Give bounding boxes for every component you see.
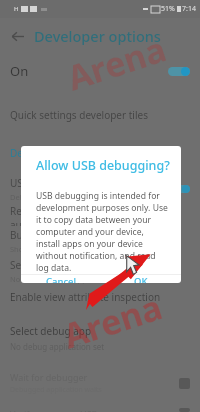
button[interactable]: Wait for debugger	[0, 370, 200, 396]
staticText: USB debugging	[10, 176, 84, 190]
button[interactable]: On	[0, 54, 200, 88]
staticText: OK	[134, 275, 148, 283]
staticText: Allow USB debugging?	[36, 157, 170, 174]
staticText: No mock location app set	[10, 274, 100, 284]
staticText: USB debugging is intended for developmen…	[36, 190, 170, 274]
button[interactable]: USB debugging	[0, 174, 200, 204]
button[interactable]: Verify apps over USB	[0, 408, 200, 412]
button[interactable]: Bug report shortcut	[0, 226, 200, 256]
staticText: Arena	[61, 25, 172, 100]
staticText: 51%	[161, 4, 175, 14]
staticText: Select mock location app	[10, 258, 127, 272]
staticText: Debugging	[10, 146, 63, 160]
staticText: Enable view attribute inspection	[10, 290, 161, 304]
staticText: H	[14, 5, 19, 13]
staticText: Quick settings developer tiles	[10, 108, 148, 122]
staticText: Developer options	[34, 26, 161, 46]
staticText: 7:14	[182, 4, 196, 14]
button[interactable]: Back	[0, 19, 34, 53]
staticText: Bug report shortcut	[10, 228, 103, 242]
staticText: Revoke USB debugging authorizations	[10, 204, 190, 226]
staticText: Arena	[57, 283, 168, 358]
staticText: On	[10, 62, 29, 80]
button[interactable]: Cancel	[21, 275, 101, 283]
staticText: Show a button in the power menu	[10, 244, 130, 254]
button[interactable]: Select mock location app	[0, 256, 200, 286]
staticText: Arena	[52, 135, 149, 202]
button[interactable]: OK	[101, 275, 181, 283]
staticText: Select debug app	[10, 324, 92, 338]
staticText: No debug application set	[10, 341, 105, 352]
staticText: Debug mode when USB is connected	[10, 192, 140, 202]
staticText: Cancel	[46, 275, 77, 283]
button[interactable]: Revoke USB debugging authorizations	[0, 204, 200, 226]
